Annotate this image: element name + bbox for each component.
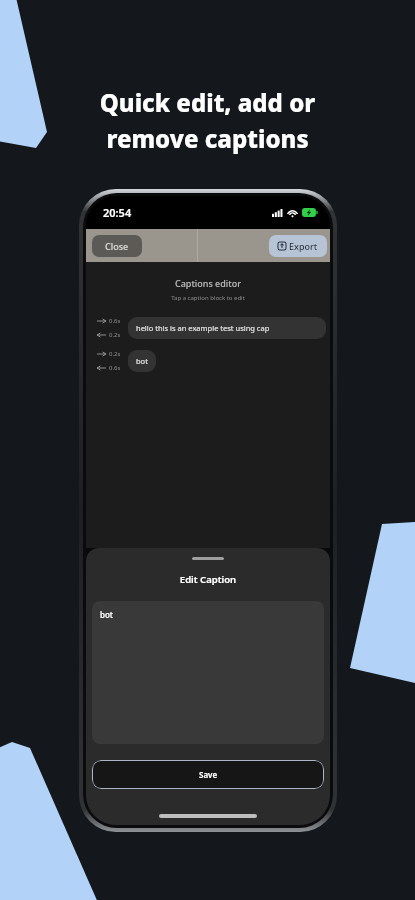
- staticText: 0.2s: [109, 350, 121, 358]
- staticText: Tap a caption block to edit: [86, 294, 330, 302]
- staticText: 0.2s: [109, 331, 121, 339]
- staticText: bot: [136, 356, 148, 366]
- staticText: 0.6s: [109, 317, 121, 325]
- staticText: 20:54: [103, 205, 132, 220]
- button[interactable]: Close: [92, 235, 142, 257]
- button[interactable]: bot: [92, 601, 324, 744]
- button[interactable]: 0.2s: [86, 350, 330, 372]
- staticText: Save: [199, 769, 218, 780]
- staticText: Captions editor: [86, 277, 330, 289]
- staticText: 0.6s: [109, 364, 121, 372]
- staticText: Edit Caption: [86, 573, 330, 586]
- staticText: remove captions: [20, 122, 395, 155]
- button[interactable]: Export: [269, 235, 327, 257]
- button[interactable]: 0.6s: [86, 317, 330, 339]
- staticText: Export: [289, 240, 318, 252]
- staticText: Quick edit, add or: [20, 86, 395, 119]
- staticText: Close: [105, 240, 129, 252]
- staticText: bot: [100, 609, 113, 620]
- staticText: hello this is an example test using cap: [136, 323, 270, 333]
- button[interactable]: Save: [92, 760, 324, 789]
